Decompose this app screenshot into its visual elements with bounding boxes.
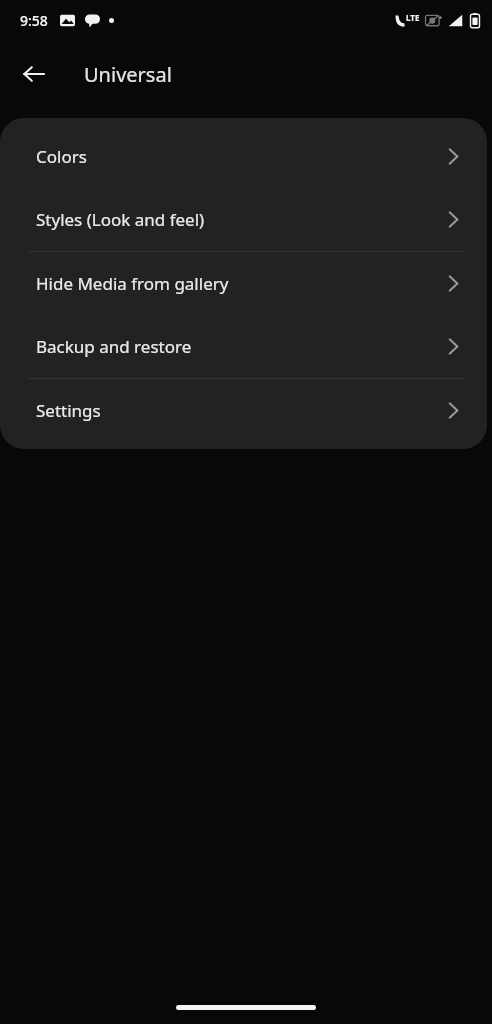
button[interactable]: Backup and restore: [0, 315, 487, 378]
staticText: Hide Media from gallery: [36, 272, 229, 295]
button[interactable]: Hide Media from gallery: [0, 252, 487, 315]
staticText: 9:58: [20, 11, 48, 30]
staticText: Settings: [36, 399, 101, 422]
button[interactable]: Settings: [0, 379, 487, 442]
staticText: LTE: [406, 12, 420, 23]
staticText: Backup and restore: [36, 335, 192, 358]
staticText: Styles (Look and feel): [36, 208, 205, 231]
staticText: Colors: [36, 145, 87, 168]
button[interactable]: Back: [10, 50, 58, 98]
button[interactable]: Colors: [0, 125, 487, 188]
button[interactable]: Styles (Look and feel): [0, 188, 487, 251]
staticText: Universal: [84, 61, 172, 88]
